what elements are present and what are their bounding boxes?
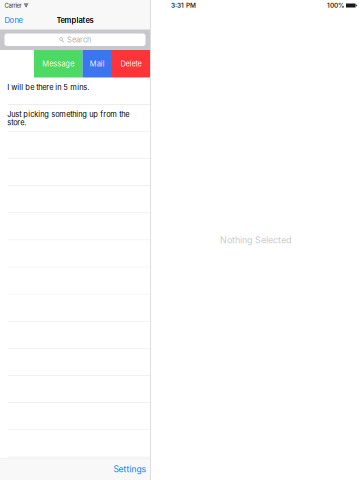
staticText: Mail [90,59,105,68]
button[interactable]: Mail [82,50,112,77]
staticText: Delete [120,59,141,68]
staticText: Templates [56,16,93,25]
button[interactable]: Settings [108,458,150,480]
staticText: Done [4,16,22,25]
button[interactable]: Message [34,50,82,77]
staticText: I will be there in 5 mins. [7,83,89,92]
staticText: Message [42,59,74,68]
button[interactable]: Done [0,11,27,29]
staticText: 100% [327,2,344,9]
staticText: Nothing Selected [220,235,291,245]
button[interactable]: Just picking something up from the store… [0,105,150,132]
button[interactable]: I will be there in 5 mins. [0,77,150,105]
staticText: 3:31 PM [171,2,196,9]
button[interactable]: Delete [112,50,150,77]
staticText: Settings [113,464,146,474]
staticText: Carrier [4,2,21,9]
staticText: Search [67,35,91,44]
staticText: Just picking something up from the store… [7,110,129,127]
